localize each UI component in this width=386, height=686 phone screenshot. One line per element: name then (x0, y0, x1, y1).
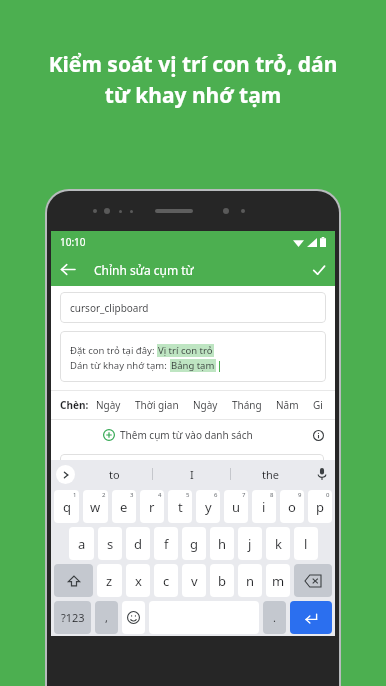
staticText: 4 (158, 491, 162, 499)
button[interactable]: c (154, 564, 178, 597)
button[interactable]: v (182, 564, 206, 597)
staticText: q (63, 498, 71, 516)
staticText: , (105, 610, 108, 625)
button[interactable]: i (252, 490, 276, 523)
button[interactable]: h (210, 527, 234, 560)
button[interactable]: Shift (54, 564, 93, 597)
staticText: u (232, 498, 241, 516)
button[interactable]: Ngày (89, 394, 128, 416)
staticText: 8 (270, 491, 274, 499)
button[interactable]: Thời gian (128, 394, 186, 416)
button[interactable]: Thêm cụm từ vào danh sách (99, 424, 257, 446)
button[interactable]: Backspace (294, 564, 332, 597)
staticText: Thêm cụm từ vào danh sách (120, 428, 253, 442)
button[interactable]: Ngày (186, 394, 225, 416)
staticText: d (134, 535, 142, 553)
staticText: r (149, 498, 155, 516)
button[interactable]: Save (302, 253, 335, 286)
staticText: Tháng (232, 398, 262, 412)
staticText: w (90, 498, 101, 516)
staticText: o (288, 498, 296, 516)
staticText: y (205, 498, 212, 516)
staticText: 2 (102, 491, 106, 499)
staticText: 7 (242, 491, 246, 499)
staticText: Vị trí con trỏ (158, 344, 213, 357)
staticText: e (120, 498, 128, 516)
button[interactable]: z (97, 564, 122, 597)
button[interactable]: k (266, 527, 290, 560)
staticText: Ngày (96, 398, 121, 412)
button[interactable]: u (224, 490, 248, 523)
button[interactable]: y (196, 490, 220, 523)
button[interactable]: Enter (290, 601, 332, 634)
button[interactable]: Expand (56, 465, 75, 484)
staticText: 5 (186, 491, 190, 499)
staticText: k (275, 535, 282, 553)
staticText: Chèn: (60, 398, 89, 412)
staticText: to (109, 467, 120, 482)
button[interactable]: o (280, 490, 304, 523)
staticText: Năm (276, 398, 299, 412)
staticText: a (78, 535, 86, 553)
button[interactable]: e (112, 490, 136, 523)
button[interactable]: a (69, 527, 94, 560)
staticText: g (190, 535, 198, 553)
button[interactable]: m (266, 564, 290, 597)
button[interactable]: cursor_clipboard (60, 292, 326, 323)
button[interactable]: to (75, 460, 153, 488)
staticText: p (316, 498, 324, 516)
button[interactable]: b (210, 564, 234, 597)
staticText: j (248, 535, 252, 553)
button[interactable]: r (140, 490, 164, 523)
button[interactable]: Emoji (122, 601, 145, 634)
button[interactable]: s (98, 527, 122, 560)
staticText: the (262, 467, 279, 482)
button[interactable]: Voice input (309, 460, 335, 488)
button[interactable]: , (95, 601, 118, 634)
button[interactable]: Giờ (306, 394, 335, 416)
staticText: s (107, 535, 114, 553)
staticText: ?123 (61, 610, 85, 625)
button[interactable]: j (238, 527, 262, 560)
staticText: h (218, 535, 227, 553)
button[interactable]: I (153, 460, 231, 488)
staticText: 0 (326, 491, 330, 499)
button[interactable]: g (182, 527, 206, 560)
staticText: Giờ (313, 398, 328, 412)
button[interactable]: f (154, 527, 178, 560)
staticText: z (106, 572, 113, 590)
button[interactable]: p (308, 490, 332, 523)
staticText: m (272, 572, 285, 590)
button[interactable]: Đặt con trỏ tại đây: (60, 331, 326, 382)
staticText: b (218, 572, 226, 590)
staticText: f (164, 535, 169, 553)
button[interactable]: t (168, 490, 192, 523)
staticText: c (163, 572, 170, 590)
button[interactable]: d (126, 527, 150, 560)
button[interactable]: x (126, 564, 150, 597)
button[interactable]: l (294, 527, 318, 560)
button[interactable]: ?123 (54, 601, 91, 634)
staticText: 10:10 (60, 235, 86, 249)
staticText: 6 (214, 491, 218, 499)
staticText: x (135, 572, 142, 590)
staticText: 9 (298, 491, 302, 499)
button[interactable]: . (263, 601, 286, 634)
staticText: Thời gian (135, 398, 179, 412)
staticText: Dán từ khay nhớ tạm: (70, 359, 170, 372)
staticText: n (246, 572, 255, 590)
staticText: Kiểm soát vị trí con trỏ, dán từ khay nh… (12, 50, 374, 109)
button[interactable]: Info (305, 422, 331, 448)
staticText: Đặt con trỏ tại đây: (70, 344, 157, 357)
staticText: l (304, 535, 308, 553)
staticText: cursor_clipboard (70, 301, 149, 315)
button[interactable]: Năm (269, 394, 306, 416)
button[interactable]: n (238, 564, 262, 597)
button[interactable]: the (231, 460, 309, 488)
button[interactable]: Tháng (225, 394, 269, 416)
button[interactable]: q (54, 490, 79, 523)
button[interactable]: w (83, 490, 108, 523)
staticText: t (178, 498, 183, 516)
button[interactable]: Back (51, 253, 84, 286)
